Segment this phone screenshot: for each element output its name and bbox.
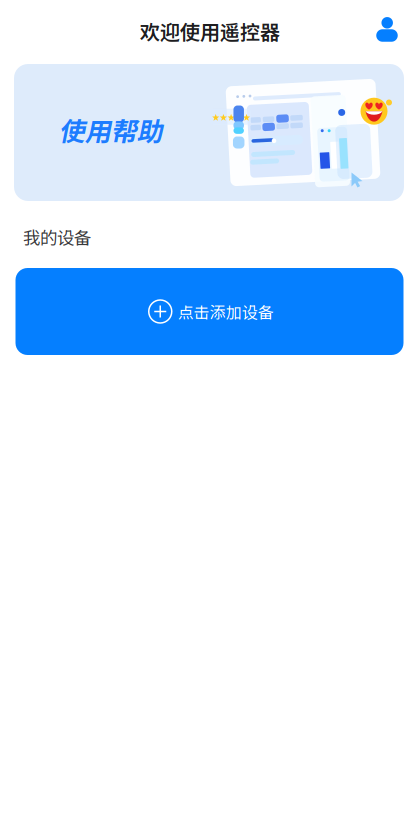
staticText: 点击添加设备 bbox=[178, 300, 274, 323]
button[interactable]: 使用帮助 bbox=[14, 64, 404, 201]
button[interactable]: Account bbox=[365, 7, 409, 51]
staticText: 我的设备 bbox=[23, 224, 91, 250]
staticText: 欢迎使用遥控器 bbox=[140, 16, 280, 45]
staticText: 使用帮助 bbox=[58, 111, 162, 149]
button[interactable]: 点击添加设备 bbox=[15, 268, 403, 355]
